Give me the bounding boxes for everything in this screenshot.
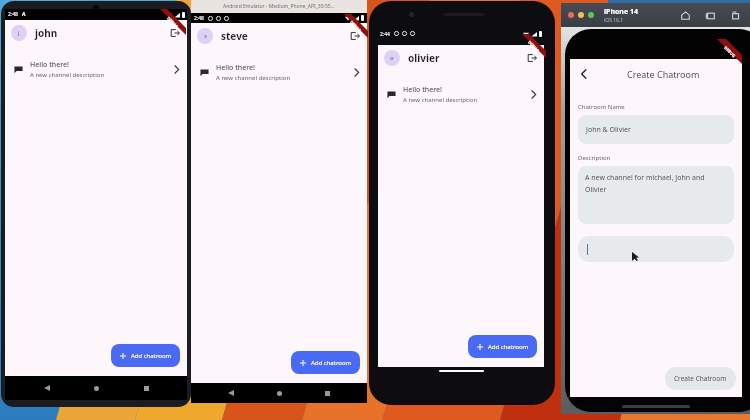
button[interactable]: Add chatroom — [468, 335, 537, 358]
button[interactable]: Hello there! — [5, 58, 187, 80]
staticText: Create Chatroom — [627, 68, 700, 80]
button[interactable]: Back — [575, 65, 593, 83]
button[interactable]: Back — [223, 385, 239, 401]
staticText: DEBUG — [723, 45, 736, 58]
button[interactable]: j — [5, 20, 187, 45]
staticText: Add chatroom — [311, 359, 352, 367]
button[interactable]: Rotate — [729, 9, 742, 22]
button[interactable]: Hello there! — [191, 61, 367, 83]
staticText: A — [22, 11, 26, 18]
staticText: DEBUG — [349, 20, 362, 33]
staticText: john — [35, 26, 58, 40]
staticText: DEBUG — [527, 40, 540, 53]
staticText: Hello there! — [30, 60, 69, 70]
staticText: 2:48 — [8, 11, 18, 18]
button[interactable]: Recents — [138, 380, 154, 396]
button[interactable]: Add chatroom — [291, 351, 360, 374]
button[interactable]: Home — [679, 9, 692, 22]
staticText: j — [18, 29, 20, 37]
staticText: Android Emulator - Medium_Phone_API_30:5… — [223, 3, 335, 10]
button[interactable]: o — [378, 45, 544, 70]
staticText: iPhone 14 — [604, 7, 638, 17]
staticText: Hello there! — [403, 85, 442, 95]
button[interactable]: s — [191, 23, 367, 48]
staticText: s — [204, 32, 207, 40]
staticText: 2:44 — [380, 31, 390, 38]
button[interactable]: Recents — [319, 385, 335, 401]
button[interactable]: Log out — [523, 49, 541, 67]
staticText: 2:48 — [194, 15, 204, 22]
button[interactable]: John & Olivier — [578, 115, 734, 144]
button[interactable]: Create Chatroom — [665, 367, 736, 390]
button[interactable]: Home — [271, 385, 287, 401]
button[interactable]: Screenshot — [704, 9, 717, 22]
staticText: Hello there! — [216, 63, 255, 73]
button[interactable]: A new channel for michael, John and Oliv… — [578, 166, 734, 224]
staticText: A new channel description — [30, 71, 105, 79]
staticText: A new channel description — [403, 96, 478, 104]
staticText: steve — [221, 29, 248, 43]
staticText: o — [390, 54, 394, 62]
staticText: Create Chatroom — [674, 374, 727, 383]
button[interactable]: Back — [39, 380, 55, 396]
staticText: Chatroom Name — [578, 103, 625, 111]
staticText: DEBUG — [166, 16, 179, 29]
button[interactable]: Add chatroom — [111, 344, 180, 367]
staticText: A new channel description — [216, 74, 291, 82]
button[interactable]: Home — [88, 380, 104, 396]
button[interactable]: Log out — [166, 24, 184, 42]
button[interactable]: Hello there! — [378, 83, 544, 105]
staticText: Description — [578, 154, 611, 162]
button[interactable]: Log out — [346, 27, 364, 45]
staticText: iOS 16.1 — [604, 17, 624, 24]
staticText: olivier — [408, 51, 440, 65]
staticText: A new channel for michael, John and Oliv… — [585, 173, 724, 194]
staticText: Add chatroom — [488, 343, 529, 351]
staticText: John & Olivier — [586, 125, 631, 135]
button[interactable] — [578, 236, 734, 262]
staticText: Add chatroom — [131, 352, 172, 360]
